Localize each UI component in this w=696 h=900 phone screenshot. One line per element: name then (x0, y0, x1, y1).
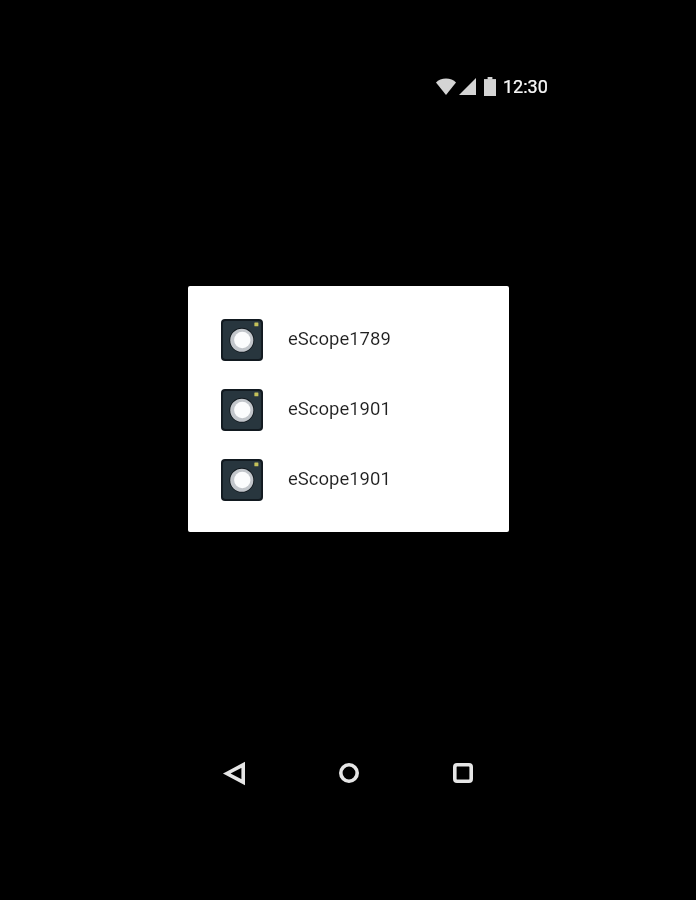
button[interactable]: Recent apps (434, 744, 492, 802)
staticText: eScope1901 (288, 468, 391, 490)
staticText: 12:30 (503, 76, 548, 97)
button[interactable]: Home (320, 744, 378, 802)
button[interactable]: eScope1901 (188, 459, 509, 501)
staticText: eScope1901 (288, 398, 391, 420)
staticText: eScope1789 (288, 328, 391, 350)
button[interactable]: eScope1901 (188, 389, 509, 431)
button[interactable]: eScope1789 (188, 319, 509, 361)
button[interactable]: Back (206, 744, 264, 802)
